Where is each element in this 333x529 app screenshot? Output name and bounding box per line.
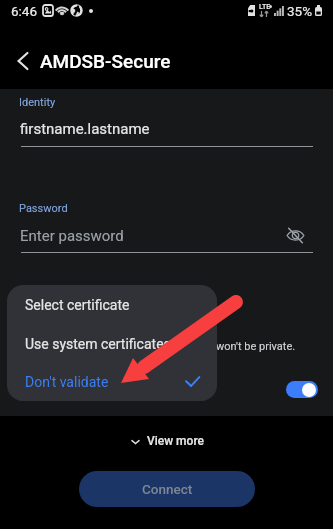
staticText: Don't validate — [25, 374, 109, 390]
staticText: firstname.lastname — [20, 120, 150, 138]
button[interactable]: Use system certificates — [7, 324, 217, 363]
staticText: AMDSB-Secure — [40, 50, 171, 72]
staticText: Identity — [19, 96, 56, 109]
button[interactable]: Toggle setting — [286, 381, 318, 398]
button[interactable]: View more — [122, 431, 212, 451]
staticText: Use system certificates — [25, 336, 171, 352]
button[interactable]: Select certificate — [7, 285, 217, 324]
staticText: Select certificate — [25, 297, 130, 313]
staticText: Connect — [142, 481, 193, 497]
staticText: won't be private. — [216, 340, 296, 353]
button[interactable]: Show password — [284, 224, 306, 246]
button[interactable]: Don't validate — [7, 362, 217, 401]
button[interactable]: Connect — [79, 471, 255, 507]
staticText: LTE — [259, 3, 271, 11]
button[interactable]: Back — [3, 41, 43, 81]
staticText: Enter password — [20, 227, 124, 245]
staticText: 6:46 — [11, 3, 38, 19]
staticText: View more — [147, 434, 204, 448]
staticText: 35% — [287, 3, 313, 19]
staticText: Password — [19, 202, 68, 215]
